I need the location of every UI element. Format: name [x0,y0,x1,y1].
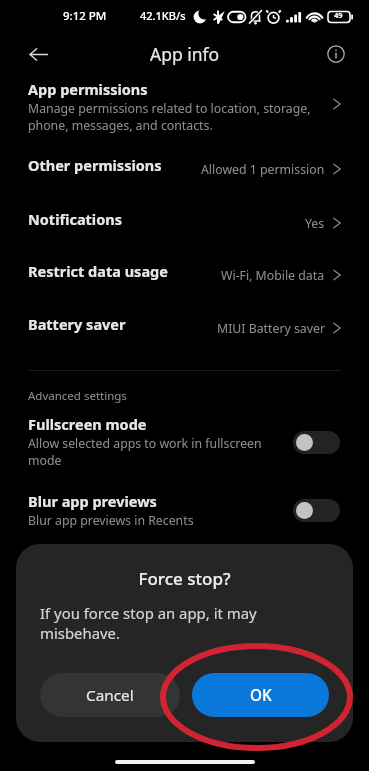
staticText: Restrict data usage [28,261,168,281]
button[interactable]: Restrict data usage [0,255,369,295]
staticText: Wi-Fi, Mobile data [221,267,325,284]
staticText: App info [150,42,220,66]
staticText: Blur app previews [28,491,157,511]
staticText: MIUI Battery saver [217,320,325,337]
staticText: Fullscreen mode [28,414,147,434]
button[interactable]: OK [192,673,329,717]
staticText: If you force stop an app, it may misbeha… [40,603,257,643]
button[interactable]: App info details [320,38,352,70]
staticText: App permissions [28,79,148,99]
button[interactable]: Cancel [40,673,180,717]
staticText: Allowed 1 permission [201,161,325,178]
button[interactable]: Fullscreen mode [293,431,340,454]
staticText: 42.1KB/s [140,8,186,23]
staticText: OK [250,685,272,706]
button[interactable]: Back [19,35,57,73]
staticText: Cancel [86,685,134,706]
staticText: Advanced settings [28,388,127,404]
button[interactable]: Other permissions [0,149,369,189]
button[interactable]: App permissions [0,73,369,126]
button[interactable]: Fullscreen mode [0,408,369,468]
button[interactable]: Battery saver [0,308,369,348]
staticText: Battery saver [28,314,126,334]
button[interactable]: Notifications [0,203,369,243]
staticText: Force stop? [16,567,353,590]
staticText: Yes [305,215,325,232]
staticText: 49 [334,10,343,20]
staticText: Blur app previews in Recents [28,512,194,529]
staticText: Manage permissions related to location, … [28,100,311,134]
staticText: 9:12 PM [63,8,107,24]
button[interactable]: Blur app previews [0,485,369,531]
staticText: Allow selected apps to work in fullscree… [28,435,262,469]
button[interactable]: Blur app previews [293,499,340,522]
staticText: Other permissions [28,155,162,175]
staticText: Notifications [28,209,122,229]
